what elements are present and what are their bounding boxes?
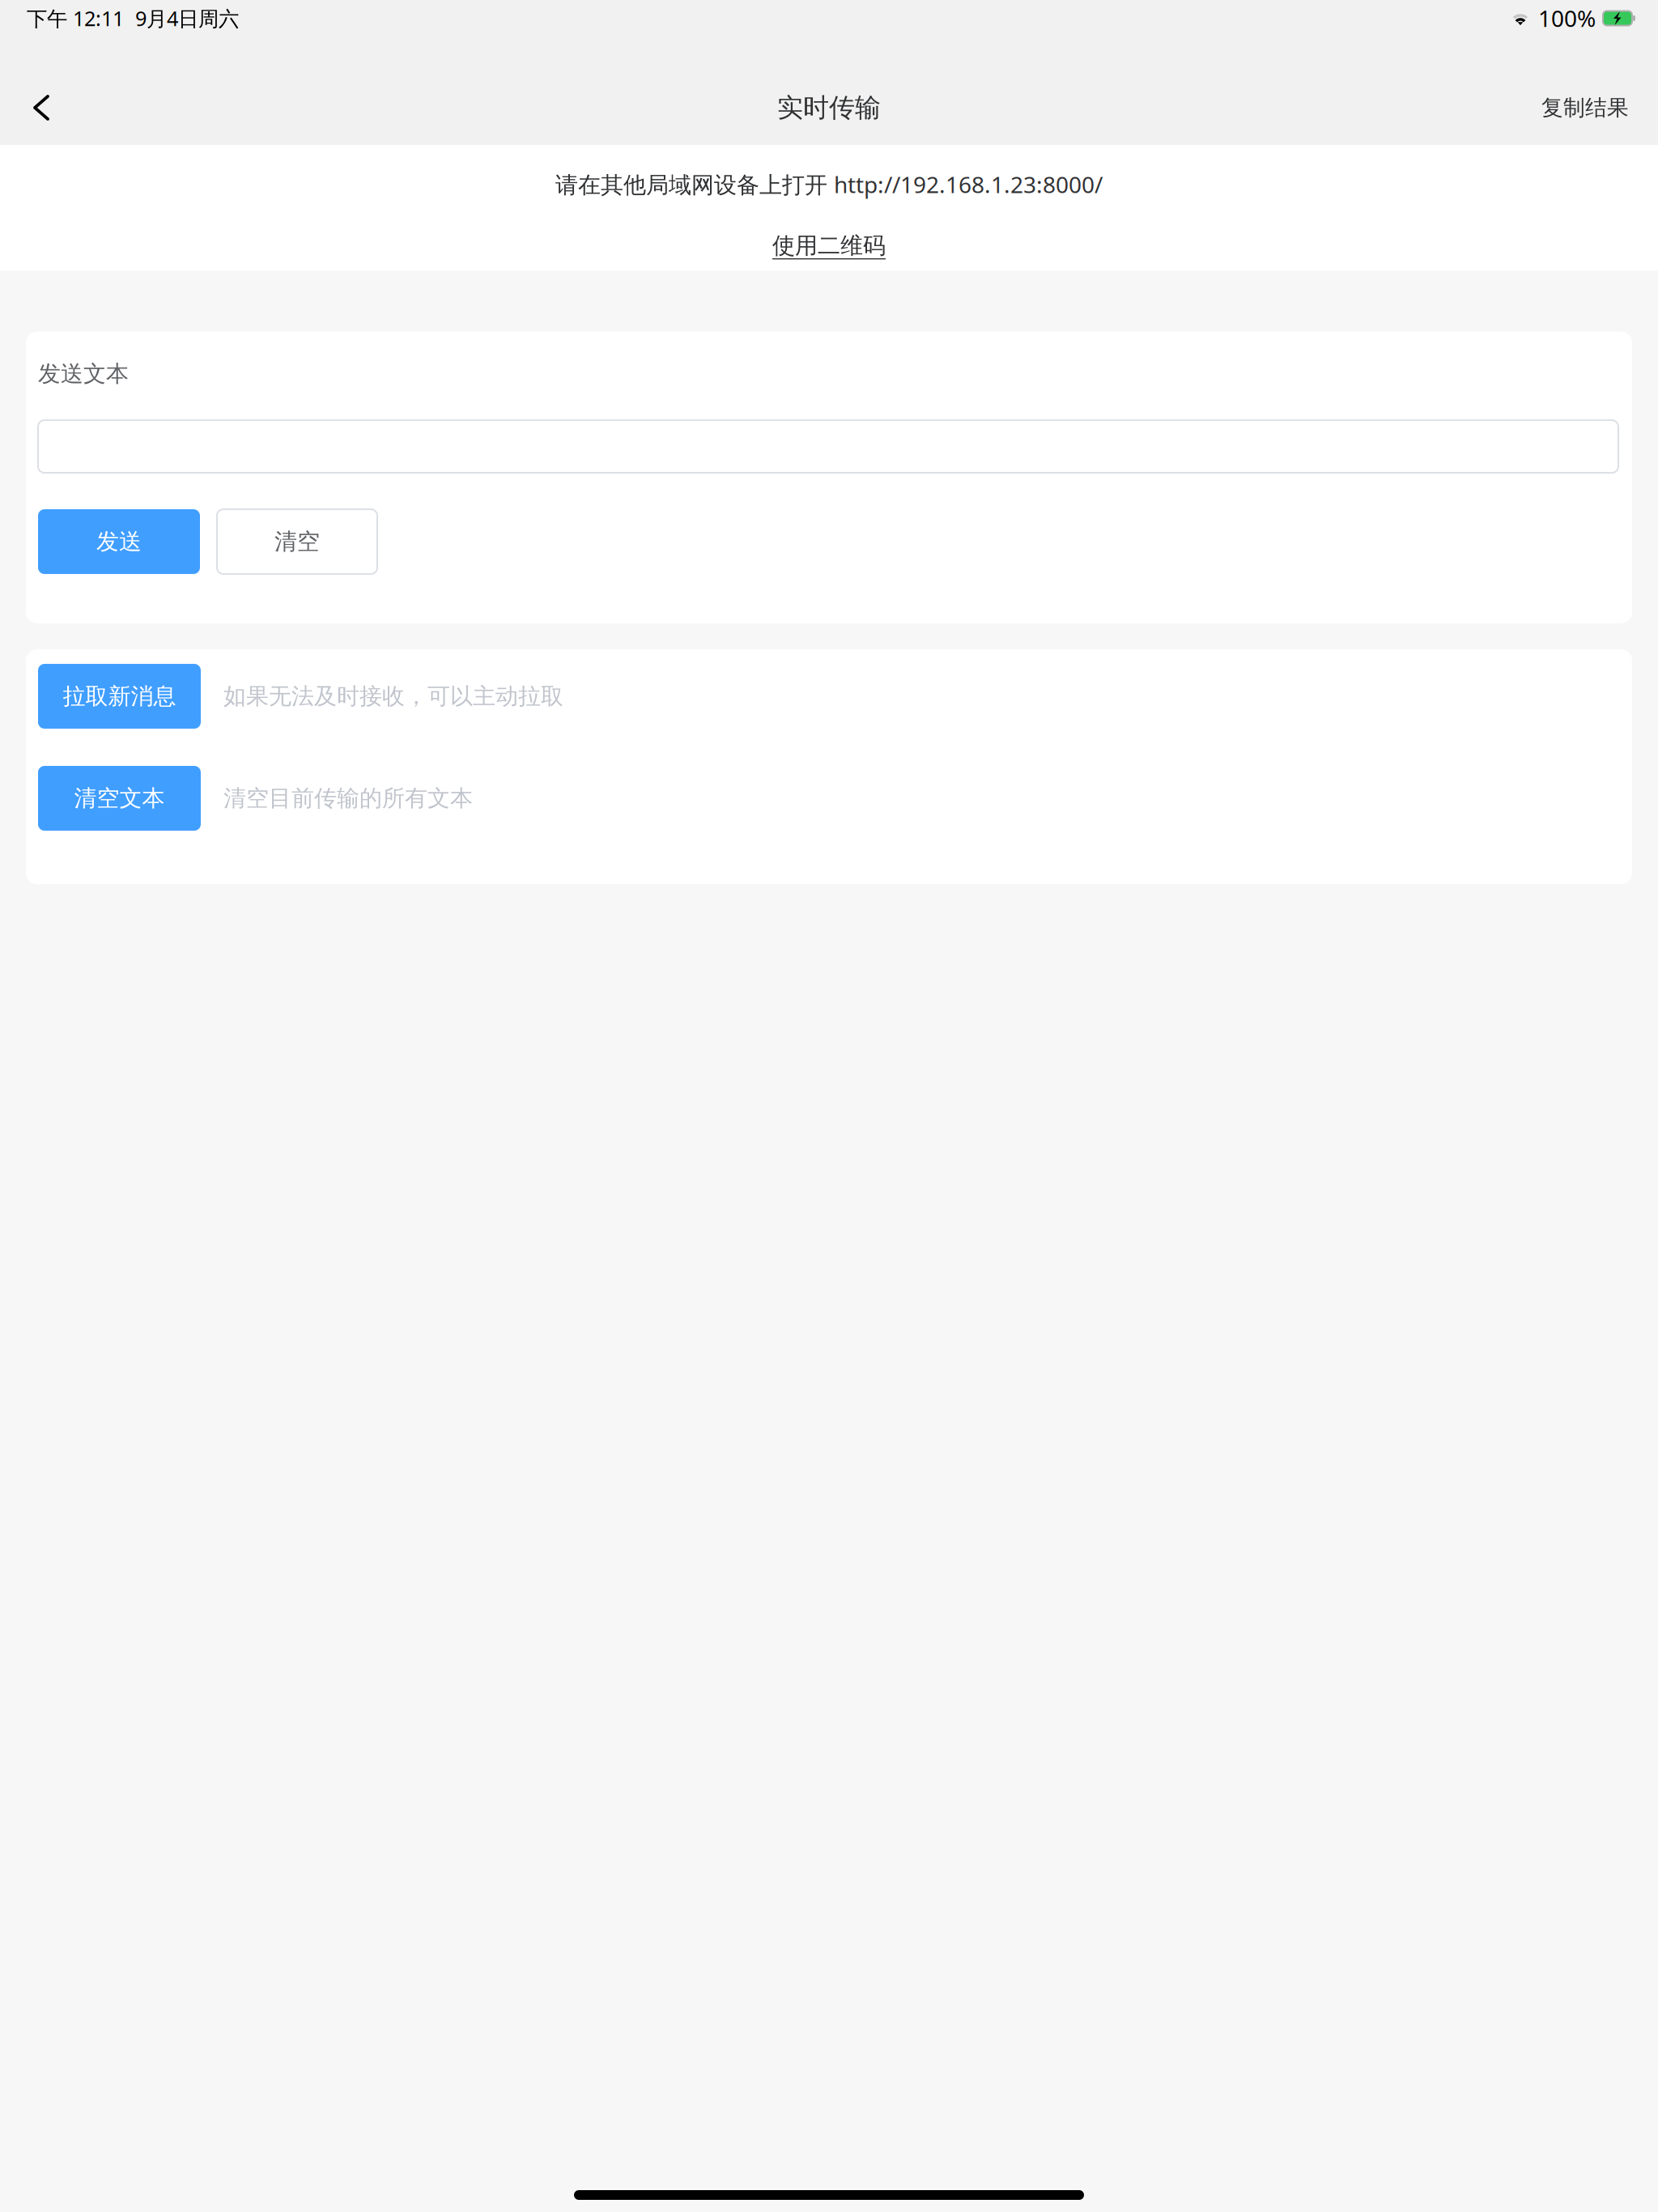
button[interactable]: 拉取新消息 xyxy=(38,664,201,729)
staticText: 实时传输 xyxy=(777,92,881,124)
staticText: 复制结果 xyxy=(1541,94,1629,121)
staticText: 下午 12:11 9月4日周六 xyxy=(27,5,239,32)
staticText: 使用二维码 xyxy=(772,232,886,260)
staticText: 拉取新消息 xyxy=(63,682,176,710)
button[interactable]: 发送 xyxy=(38,509,200,574)
button[interactable]: 使用二维码 xyxy=(772,199,886,260)
button[interactable]: 清空文本 xyxy=(38,766,201,831)
staticText: 清空目前传输的所有文本 xyxy=(223,784,473,812)
button[interactable]: 返回 xyxy=(0,78,74,138)
staticText: 清空文本 xyxy=(74,784,165,812)
staticText: 如果无法及时接收，可以主动拉取 xyxy=(223,682,563,710)
button[interactable]: 清空 xyxy=(217,509,377,574)
staticText: 发送 xyxy=(96,528,142,556)
staticText: 发送文本 xyxy=(38,360,129,388)
staticText: 请在其他局域网设备上打开 http://192.168.1.23:8000/ xyxy=(555,169,1103,199)
button[interactable]: 复制结果 xyxy=(1516,78,1658,138)
staticText: 100% xyxy=(1538,3,1596,33)
staticText: 清空 xyxy=(274,528,320,556)
